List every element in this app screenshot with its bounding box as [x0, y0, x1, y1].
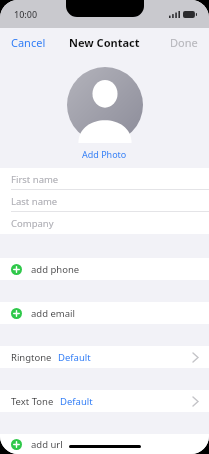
staticText: add email	[31, 307, 75, 320]
button[interactable]: Last name	[0, 190, 209, 212]
button[interactable]: First name	[0, 168, 209, 190]
staticText: 10:00	[14, 8, 38, 20]
staticText: First name	[11, 173, 59, 186]
button[interactable]: Add Photo	[74, 147, 135, 161]
staticText: Done	[170, 35, 198, 50]
button[interactable]: add url	[0, 434, 209, 454]
staticText: Default	[60, 395, 93, 408]
button[interactable]: Add Photo	[67, 67, 143, 143]
staticText: add url	[31, 438, 63, 451]
button[interactable]: Company	[0, 212, 209, 234]
button[interactable]: add email	[0, 302, 209, 324]
staticText: Text Tone	[11, 395, 54, 408]
staticText: Last name	[11, 195, 58, 208]
staticText: Default	[58, 351, 91, 364]
staticText: Company	[11, 217, 54, 230]
staticText: Cancel	[11, 35, 46, 50]
staticText: Add Photo	[82, 148, 127, 160]
staticText: Ringtone	[11, 351, 52, 364]
button[interactable]: Cancel	[0, 29, 57, 56]
button[interactable]: Done	[159, 29, 209, 56]
staticText: New Contact	[69, 35, 140, 50]
button[interactable]: Ringtone	[0, 346, 209, 368]
button[interactable]: add phone	[0, 258, 209, 280]
staticText: add phone	[31, 263, 80, 276]
button[interactable]: Text Tone	[0, 390, 209, 412]
